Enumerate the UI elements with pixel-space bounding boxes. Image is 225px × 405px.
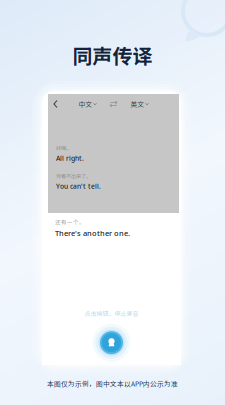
button[interactable]: Back	[48, 96, 62, 112]
button[interactable]: 中文	[78, 99, 96, 109]
staticText: 你看不出来了。	[56, 172, 91, 180]
button[interactable]: Stop recording	[92, 324, 130, 362]
staticText: 点击按钮，停止录音	[84, 309, 138, 318]
staticText: 英文	[130, 99, 144, 109]
staticText: 好喔。	[56, 144, 71, 152]
staticText: 还有一个。	[55, 218, 85, 226]
staticText: 本图仅为示例，图中文本以APP内公示为准	[47, 379, 178, 388]
staticText: 中文	[78, 99, 92, 109]
button[interactable]: 英文	[130, 99, 148, 109]
staticText: You can't tell.	[56, 182, 101, 191]
staticText: 同声传译	[72, 40, 152, 69]
button[interactable]: Swap languages	[109, 100, 117, 108]
staticText: There's another one.	[55, 228, 130, 238]
staticText: All right.	[56, 154, 84, 163]
